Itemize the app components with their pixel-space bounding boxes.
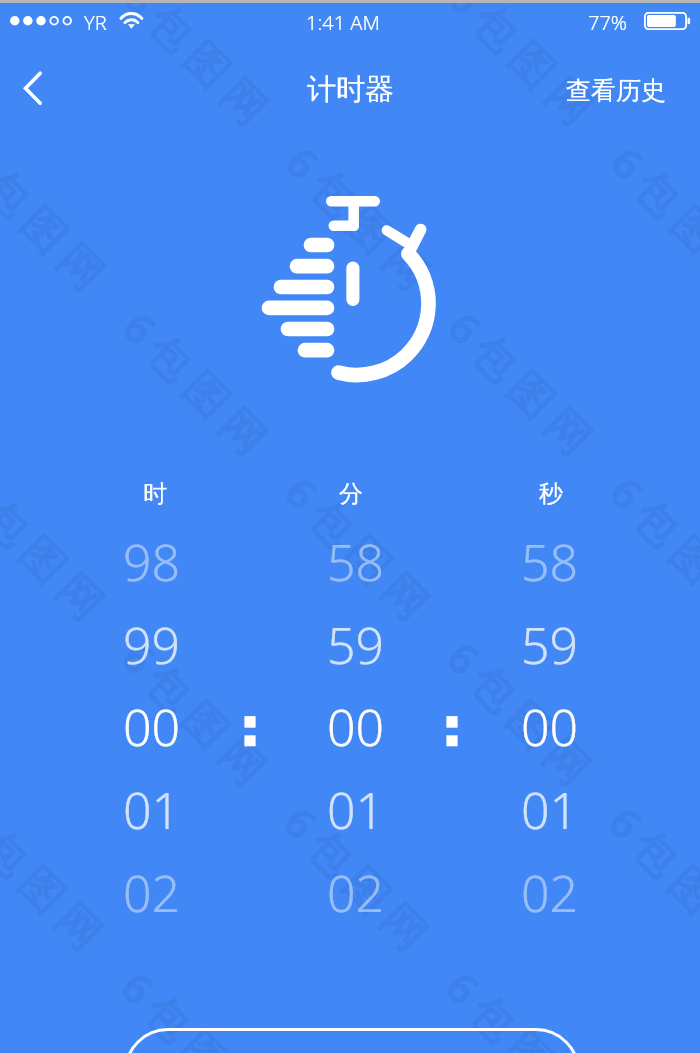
staticText: 6包图网 bbox=[272, 463, 448, 639]
staticText: 6包图网 bbox=[596, 793, 700, 969]
staticText: 分 bbox=[339, 479, 363, 509]
staticText: 00 bbox=[123, 693, 181, 761]
staticText: 6包图网 bbox=[433, 958, 609, 1053]
button[interactable]: 01 bbox=[490, 769, 610, 851]
staticText: 6包图网 bbox=[435, 298, 611, 474]
staticText: 59 bbox=[521, 611, 579, 679]
staticText: 时 bbox=[143, 479, 167, 509]
button[interactable]: 99 bbox=[92, 604, 212, 686]
staticText: 1:41 AM bbox=[306, 9, 380, 36]
staticText: 00 bbox=[521, 693, 579, 761]
button[interactable]: 98 bbox=[92, 521, 212, 603]
button[interactable]: 00 bbox=[296, 686, 416, 768]
button[interactable]: 02 bbox=[296, 852, 416, 934]
staticText: 58 bbox=[327, 528, 385, 596]
staticText: 6包图网 bbox=[271, 793, 447, 969]
staticText: 6包图网 bbox=[436, 0, 612, 144]
staticText: 6包图网 bbox=[110, 298, 286, 474]
staticText: 查看历史 bbox=[566, 75, 666, 106]
staticText: 6包图网 bbox=[109, 628, 285, 804]
button[interactable]: 00 bbox=[490, 686, 610, 768]
button[interactable]: 59 bbox=[296, 604, 416, 686]
staticText: 98 bbox=[123, 528, 181, 596]
button[interactable]: 59 bbox=[490, 604, 610, 686]
staticText: 02 bbox=[521, 859, 579, 927]
button[interactable]: 01 bbox=[92, 769, 212, 851]
staticText: 77% bbox=[588, 9, 628, 36]
button[interactable]: 00 bbox=[92, 686, 212, 768]
staticText: 秒 bbox=[539, 479, 563, 509]
staticText: YR bbox=[84, 9, 107, 36]
button[interactable]: 58 bbox=[490, 521, 610, 603]
staticText: 02 bbox=[327, 859, 385, 927]
staticText: 01 bbox=[327, 776, 385, 844]
button[interactable]: 开始 bbox=[124, 1028, 580, 1053]
staticText: 计时器 bbox=[307, 71, 394, 108]
button[interactable]: Back bbox=[3, 58, 65, 120]
button[interactable]: 02 bbox=[490, 852, 610, 934]
staticText: 02 bbox=[123, 859, 181, 927]
staticText: 6包图网 bbox=[0, 793, 122, 969]
staticText: 6包图网 bbox=[108, 958, 284, 1053]
staticText: 6包图网 bbox=[0, 463, 123, 639]
staticText: 01 bbox=[123, 776, 181, 844]
staticText: 6包图网 bbox=[434, 628, 610, 804]
staticText: 01 bbox=[521, 776, 579, 844]
button[interactable]: 01 bbox=[296, 769, 416, 851]
staticText: 6包图网 bbox=[0, 133, 124, 309]
button[interactable]: 查看历史 bbox=[554, 65, 700, 116]
staticText: 6包图网 bbox=[597, 463, 700, 639]
staticText: 59 bbox=[327, 611, 385, 679]
staticText: 58 bbox=[521, 528, 579, 596]
staticText: 6包图网 bbox=[598, 133, 700, 309]
staticText: 6包图网 bbox=[111, 0, 287, 144]
button[interactable]: 58 bbox=[296, 521, 416, 603]
staticText: 00 bbox=[327, 693, 385, 761]
staticText: 99 bbox=[123, 611, 181, 679]
staticText: 6包图网 bbox=[273, 133, 449, 309]
button[interactable]: 02 bbox=[92, 852, 212, 934]
